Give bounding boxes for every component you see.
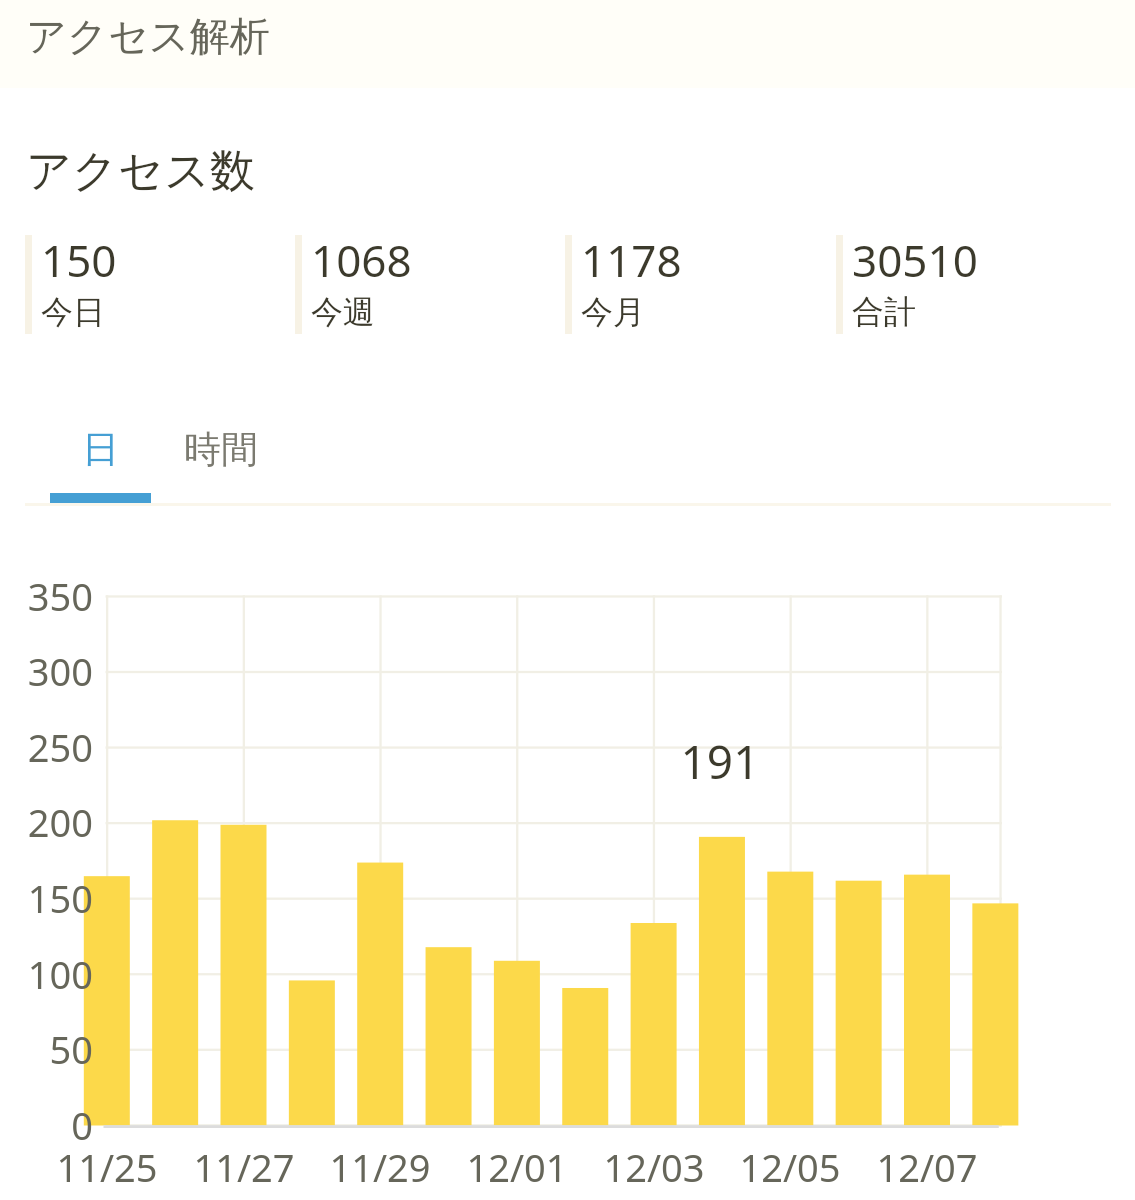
staticText: 11/25 [17, 1141, 197, 1193]
staticText: 1178 [581, 230, 682, 290]
staticText: 今週 [311, 292, 375, 329]
staticText: 150 [41, 230, 117, 290]
button[interactable]: 150 [25, 235, 295, 334]
other: Daily access bar chart [0, 0, 1135, 1200]
staticText: 50 [2, 1023, 93, 1075]
staticText: 12/07 [837, 1141, 1017, 1193]
staticText: 0 [2, 1099, 93, 1151]
button[interactable]: 30510 [836, 235, 1107, 334]
button[interactable]: 1178 [565, 235, 836, 334]
staticText: 時間 [184, 426, 258, 473]
staticText: アクセス数 [26, 143, 256, 200]
staticText: 11/29 [290, 1141, 470, 1193]
staticText: 1068 [311, 230, 412, 290]
staticText: 12/01 [427, 1141, 607, 1193]
staticText: 合計 [852, 292, 916, 329]
staticText: 200 [2, 796, 93, 848]
staticText: 250 [2, 721, 93, 773]
staticText: 12/03 [564, 1141, 744, 1193]
staticText: 11/27 [154, 1141, 334, 1193]
staticText: 12/05 [700, 1141, 880, 1193]
button[interactable]: 1068 [295, 235, 565, 334]
staticText: 191 [640, 730, 800, 793]
button[interactable]: 日 [50, 408, 151, 491]
staticText: アクセス解析 [26, 11, 270, 61]
staticText: 日 [82, 426, 119, 473]
staticText: 今月 [581, 292, 645, 329]
staticText: 今日 [41, 292, 105, 329]
staticText: 300 [2, 645, 93, 697]
button[interactable]: 時間 [171, 408, 271, 491]
staticText: 350 [2, 570, 93, 622]
staticText: 100 [2, 948, 93, 1000]
staticText: 30510 [852, 230, 978, 290]
staticText: 150 [2, 872, 93, 924]
